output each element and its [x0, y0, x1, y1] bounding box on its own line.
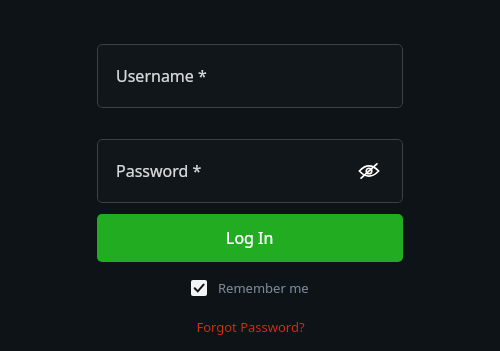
staticText: Password *	[116, 160, 202, 182]
staticText: Username *	[116, 65, 207, 87]
staticText: Log In	[226, 227, 274, 249]
button[interactable]: Log In	[97, 214, 403, 262]
staticText: Remember me	[218, 279, 309, 297]
button[interactable]: Password *	[97, 139, 403, 203]
button[interactable]: Show password	[354, 156, 384, 186]
button[interactable]: Username *	[97, 44, 403, 108]
button[interactable]: Forgot Password?	[190, 315, 311, 339]
button[interactable]: Remember me	[187, 275, 313, 301]
staticText: Forgot Password?	[196, 318, 305, 336]
